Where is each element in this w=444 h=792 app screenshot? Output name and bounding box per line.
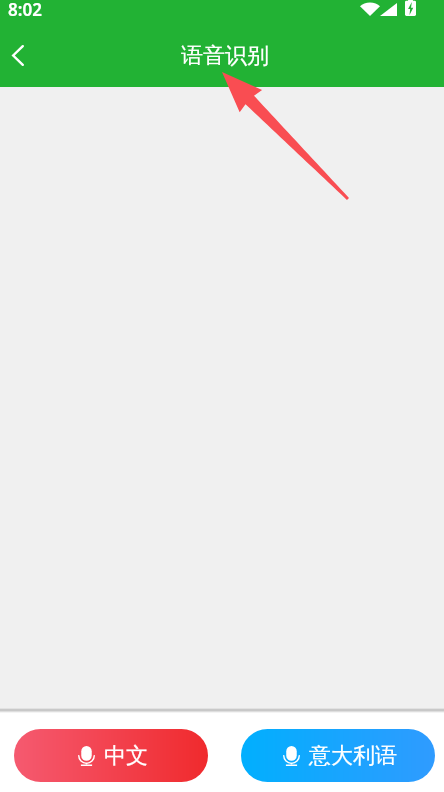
staticText: 意大利语 bbox=[309, 742, 397, 770]
button[interactable]: Back bbox=[0, 37, 36, 73]
staticText: 语音识别 bbox=[181, 42, 269, 70]
button[interactable]: 意大利语 bbox=[241, 729, 435, 782]
staticText: 8:02 bbox=[8, 0, 42, 17]
staticText: 中文 bbox=[104, 742, 148, 770]
button[interactable]: 中文 bbox=[14, 729, 208, 782]
